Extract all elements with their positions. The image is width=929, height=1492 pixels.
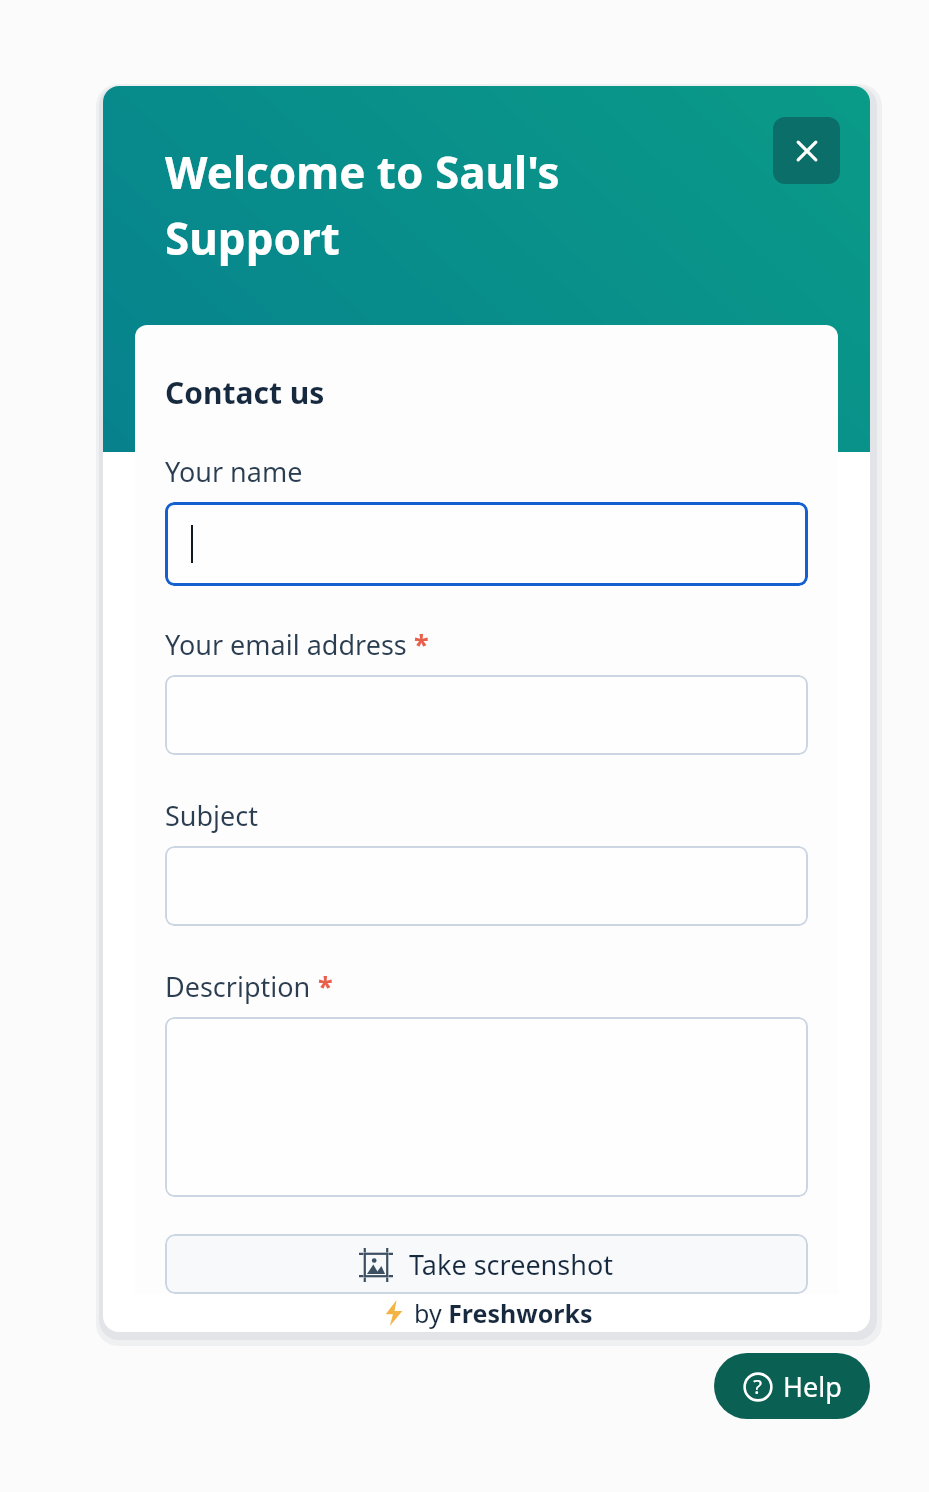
staticText: Take screenshot xyxy=(409,1246,614,1283)
button[interactable] xyxy=(165,675,808,755)
button[interactable] xyxy=(165,502,808,586)
button[interactable]: Take screenshot xyxy=(165,1234,808,1294)
staticText: Contact us xyxy=(165,372,325,413)
button[interactable]: Help xyxy=(714,1353,870,1419)
staticText: by Freshworks xyxy=(414,1296,593,1330)
staticText: Description xyxy=(165,968,311,1005)
staticText: ? xyxy=(753,1373,762,1400)
button[interactable]: Close xyxy=(773,117,840,184)
button[interactable] xyxy=(165,1017,808,1197)
staticText: Subject xyxy=(165,797,259,834)
staticText: Your name xyxy=(165,453,303,490)
staticText: Help xyxy=(783,1368,842,1405)
button[interactable]: by Freshworks xyxy=(381,1296,593,1330)
staticText: * xyxy=(318,968,333,1005)
staticText: Welcome to Saul's Support xyxy=(165,142,725,268)
button[interactable] xyxy=(165,846,808,926)
staticText: Your email address xyxy=(165,626,407,663)
staticText: * xyxy=(414,626,429,663)
